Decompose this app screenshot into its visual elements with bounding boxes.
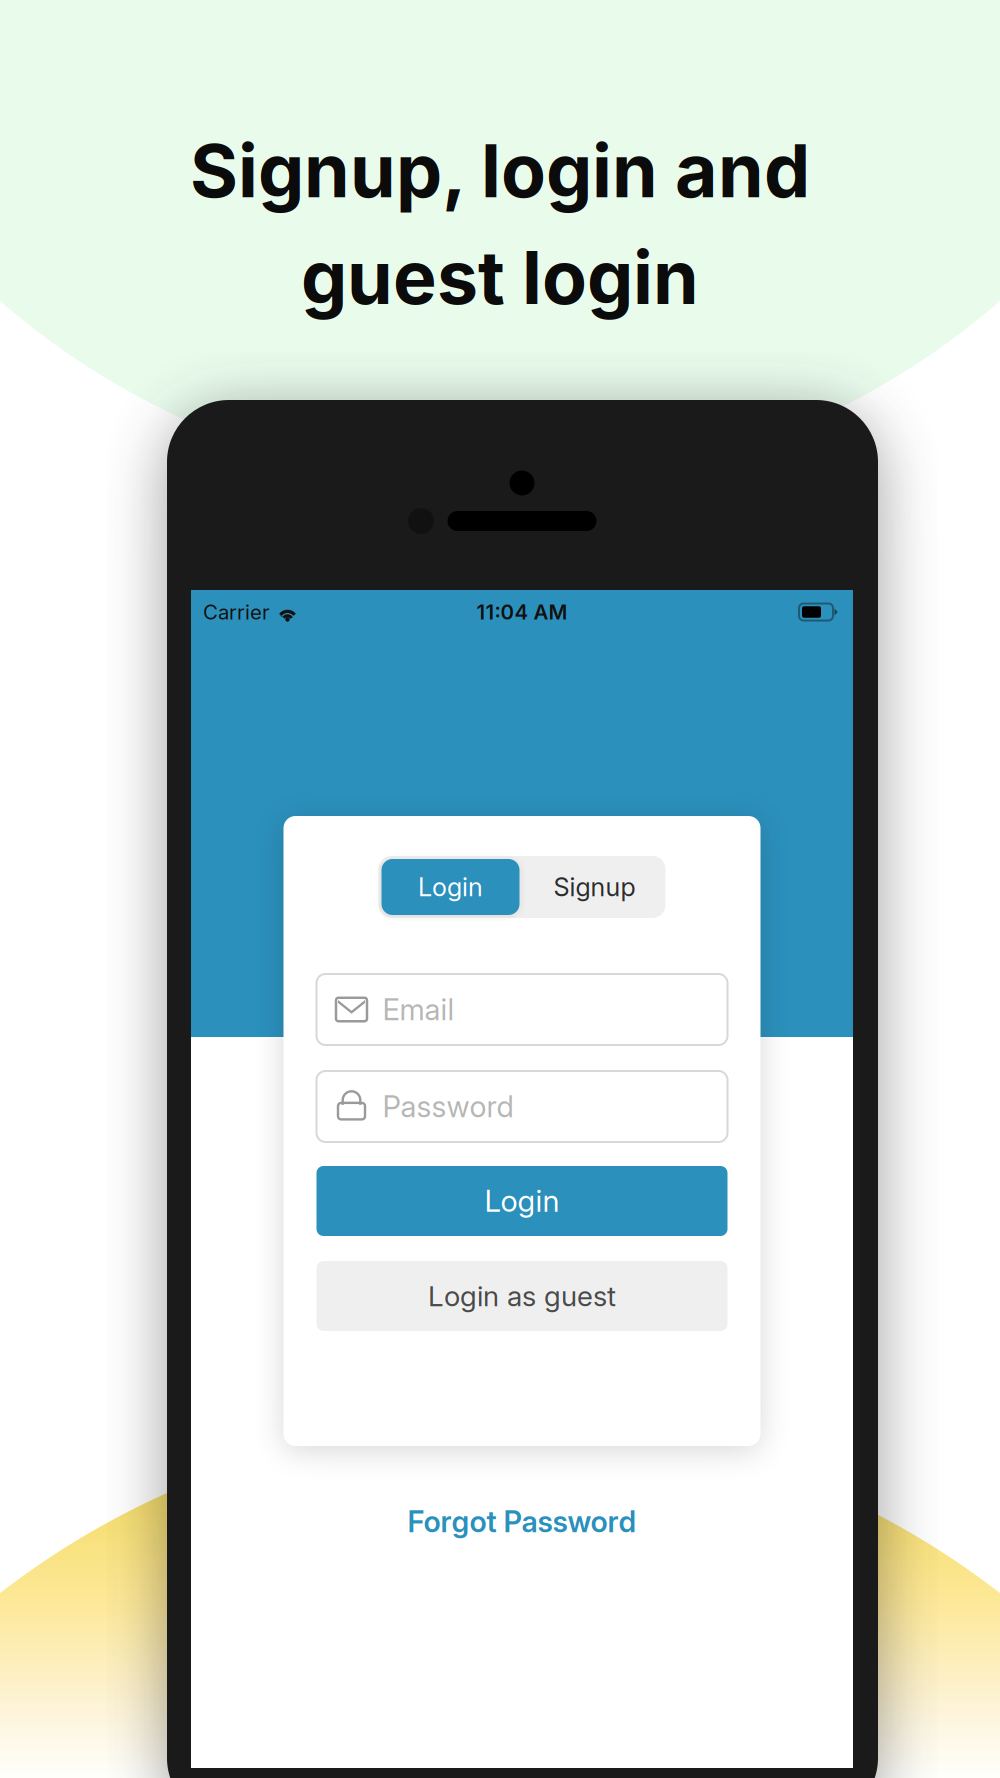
staticText: Login as guest <box>428 1279 616 1313</box>
staticText: Signup, login and <box>190 126 810 215</box>
staticText: Login <box>418 872 483 902</box>
button[interactable]: Login as guest <box>316 1261 727 1331</box>
staticText: Email <box>382 992 454 1027</box>
button[interactable]: Forgot Password <box>397 1494 646 1549</box>
button[interactable]: Login <box>381 859 519 915</box>
button[interactable]: Login <box>316 1166 727 1236</box>
staticText: Carrier <box>203 600 270 624</box>
staticText: Signup <box>553 872 635 902</box>
staticText: Password <box>382 1089 513 1124</box>
staticText: guest login <box>301 233 699 322</box>
staticText: 11:04 AM <box>476 600 567 624</box>
staticText: Login <box>484 1183 559 1219</box>
staticText: Forgot Password <box>407 1504 636 1539</box>
button[interactable]: Signup <box>519 859 669 915</box>
